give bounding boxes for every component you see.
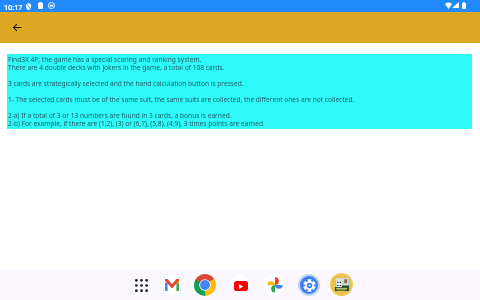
button[interactable]: Gmail	[162, 275, 182, 295]
button[interactable]: All apps	[131, 275, 151, 295]
button[interactable]: YouTube	[230, 275, 251, 296]
button[interactable]: Photos	[264, 274, 285, 295]
button[interactable]: Settings	[298, 274, 320, 296]
staticText: Find3X 4P; the game has a special scorin…	[8, 55, 355, 128]
button[interactable]: Find3X game	[330, 273, 353, 296]
button[interactable]: Chrome	[194, 274, 216, 296]
staticText: 10:17	[4, 2, 23, 12]
button[interactable]: Back	[6, 17, 27, 38]
